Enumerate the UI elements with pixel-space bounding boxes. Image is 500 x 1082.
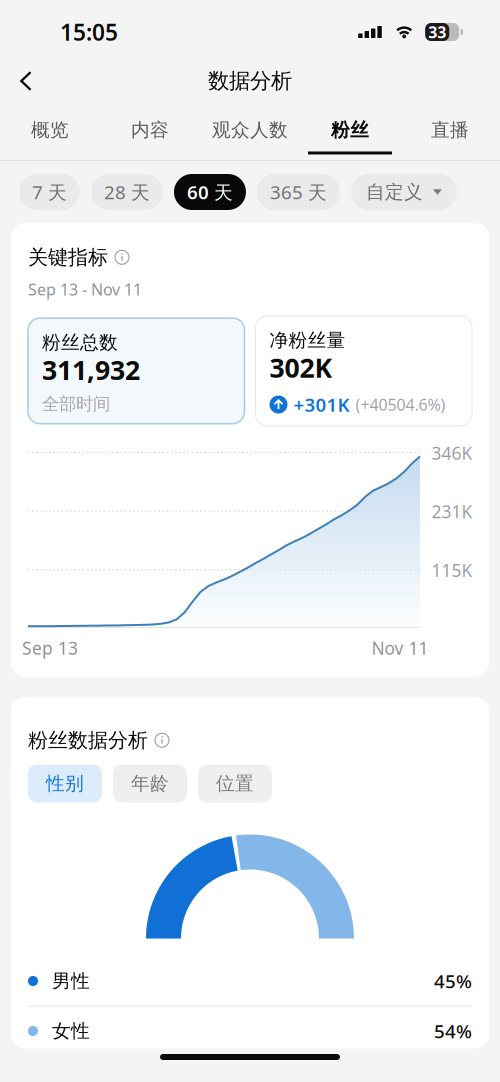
- button[interactable]: 直播: [400, 113, 500, 160]
- button[interactable]: 粉丝: [300, 113, 400, 160]
- staticText: Sep 13: [22, 636, 78, 659]
- button[interactable]: 60 天: [174, 174, 246, 210]
- staticText: 年龄: [131, 772, 169, 795]
- button[interactable]: 粉丝总数: [28, 318, 244, 424]
- staticText: +301K: [293, 392, 349, 417]
- staticText: 365 天: [270, 180, 327, 204]
- button[interactable]: 概览: [0, 113, 100, 160]
- button[interactable]: 净粉丝量: [255, 316, 472, 426]
- staticText: 45%: [434, 969, 472, 993]
- staticText: 15:05: [60, 17, 118, 47]
- staticText: 231K: [431, 500, 472, 523]
- staticText: Nov 11: [371, 636, 428, 659]
- staticText: 自定义: [366, 180, 423, 203]
- staticText: 115K: [431, 559, 472, 582]
- staticText: 7 天: [32, 180, 67, 204]
- button[interactable]: 365 天: [257, 174, 340, 210]
- staticText: 33: [428, 21, 446, 43]
- staticText: 性别: [46, 772, 84, 795]
- button[interactable]: 7 天: [19, 174, 80, 210]
- staticText: 关键指标: [28, 245, 108, 270]
- staticText: 概览: [31, 118, 69, 141]
- staticText: (+40504.6%): [355, 394, 445, 415]
- staticText: 位置: [216, 772, 254, 795]
- staticText: 内容: [131, 118, 169, 141]
- staticText: 观众人数: [212, 118, 288, 141]
- staticText: 60 天: [187, 180, 233, 204]
- button[interactable]: 年龄: [113, 764, 187, 802]
- staticText: 粉丝: [331, 118, 369, 141]
- staticText: 数据分析: [208, 68, 292, 94]
- button[interactable]: 28 天: [91, 174, 163, 210]
- staticText: 302K: [269, 350, 332, 385]
- staticText: 54%: [434, 1019, 472, 1043]
- staticText: 311,932: [42, 352, 140, 387]
- staticText: 346K: [431, 441, 472, 464]
- staticText: 28 天: [104, 180, 150, 204]
- staticText: Sep 13 - Nov 11: [28, 279, 142, 300]
- button[interactable]: 观众人数: [200, 113, 300, 160]
- staticText: 女性: [52, 1019, 90, 1042]
- button[interactable]: 位置: [198, 764, 272, 802]
- button[interactable]: Back: [0, 59, 48, 103]
- staticText: 粉丝数据分析: [28, 728, 148, 752]
- button[interactable]: 自定义: [351, 174, 457, 210]
- staticText: 粉丝总数: [42, 331, 118, 354]
- staticText: 直播: [431, 118, 469, 141]
- staticText: 男性: [52, 969, 90, 992]
- staticText: 全部时间: [42, 393, 110, 415]
- button[interactable]: 内容: [100, 113, 200, 160]
- button[interactable]: 性别: [28, 764, 102, 802]
- staticText: 净粉丝量: [269, 329, 345, 352]
